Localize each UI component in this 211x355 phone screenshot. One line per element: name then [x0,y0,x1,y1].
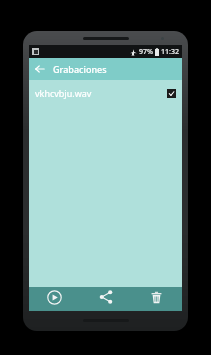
button[interactable]: Delete [131,287,182,311]
button[interactable]: Back [29,58,51,80]
button[interactable]: Play [29,287,80,311]
button[interactable]: Selected [167,89,176,98]
staticText: 97% [139,47,153,57]
button[interactable]: Share [80,287,131,311]
button[interactable]: vkhcvbju.wav [29,80,182,106]
staticText: Grabaciones [53,63,107,75]
staticText: vkhcvbju.wav [35,87,167,99]
staticText: 11:32 [161,47,179,57]
